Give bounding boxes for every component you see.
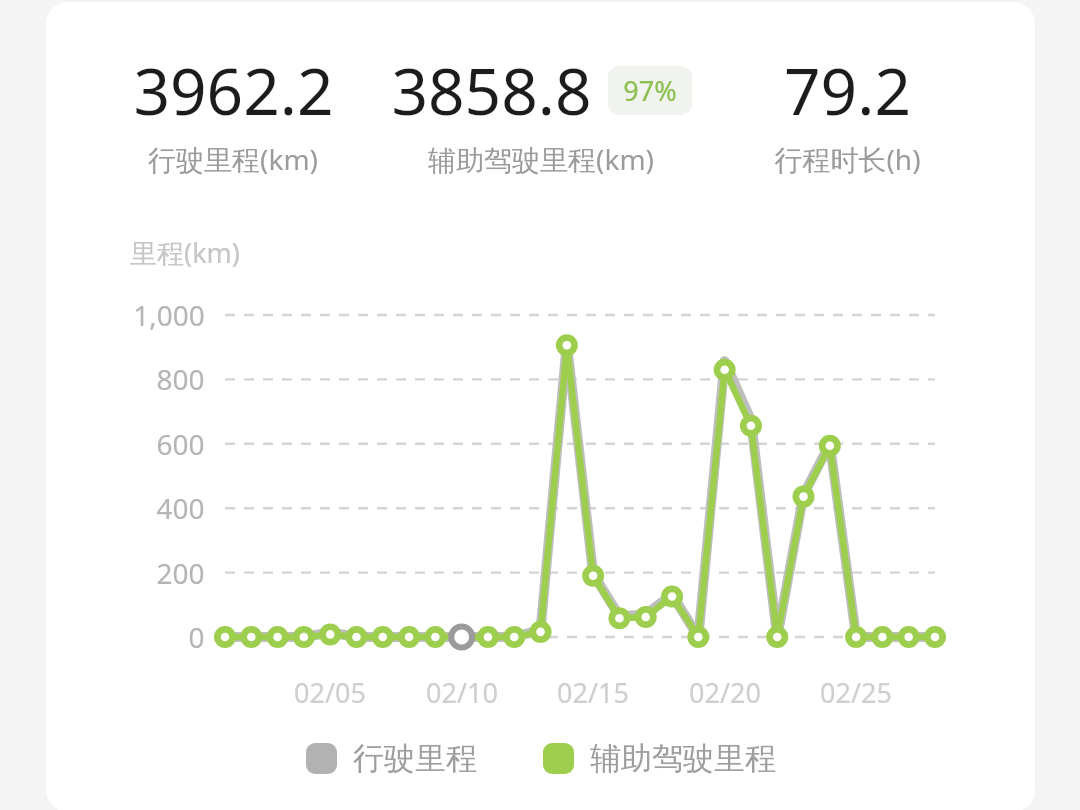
button[interactable]: 辅助驾驶里程 [539, 735, 780, 782]
staticText: 79.2 [784, 47, 911, 134]
staticText: 600 [156, 425, 205, 463]
staticText: 200 [156, 554, 205, 592]
staticText: 02/10 [426, 674, 498, 711]
staticText: 3858.8 [391, 47, 592, 134]
staticText: 02/25 [820, 674, 892, 711]
staticText: 800 [156, 360, 205, 398]
staticText: 里程(km) [130, 234, 240, 271]
staticText: 行驶里程(km) [148, 140, 318, 178]
staticText: 400 [156, 489, 205, 527]
staticText: 1,000 [133, 296, 205, 334]
button[interactable]: 行驶里程 [302, 735, 481, 782]
staticText: 3962.2 [133, 47, 334, 134]
staticText: 辅助驾驶里程(km) [428, 140, 654, 178]
button[interactable]: 79.2 [607, 44, 1035, 136]
staticText: 辅助驾驶里程 [590, 739, 776, 778]
staticText: 02/20 [689, 674, 761, 711]
staticText: 02/05 [294, 674, 366, 711]
staticText: 行程时长(h) [774, 140, 921, 178]
staticText: 97% [623, 72, 677, 109]
other: 行驶里程 [306, 743, 337, 774]
button[interactable]: 3962.2 [46, 44, 473, 136]
other: 辅助驾驶里程 [543, 743, 574, 774]
staticText: 行驶里程 [353, 739, 477, 778]
button[interactable]: 3858.8 [301, 44, 781, 136]
staticText: 0 [188, 618, 205, 656]
staticText: 02/15 [557, 674, 629, 711]
